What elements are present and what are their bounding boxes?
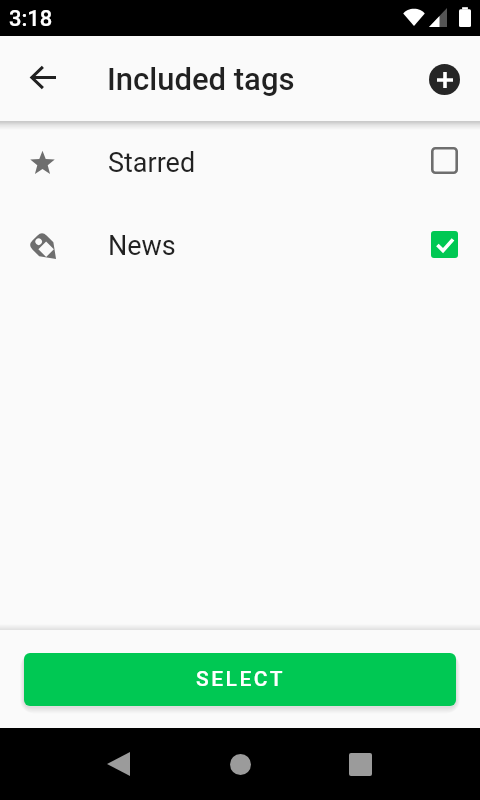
- button[interactable]: Home: [204, 728, 276, 800]
- staticText: SELECT: [196, 667, 285, 692]
- button[interactable]: Recent apps: [324, 728, 396, 800]
- staticText: 3:18: [9, 6, 53, 32]
- button[interactable]: Add tag: [420, 55, 468, 103]
- button[interactable]: SELECT: [24, 653, 456, 706]
- button[interactable]: Starred: [0, 121, 480, 204]
- staticText: Starred: [108, 147, 196, 179]
- staticText: News: [108, 230, 176, 262]
- button[interactable]: Back: [18, 55, 66, 103]
- button[interactable]: Toggle: [424, 226, 464, 266]
- button[interactable]: News: [0, 204, 480, 287]
- button[interactable]: Toggle: [424, 143, 464, 183]
- button[interactable]: Back: [82, 728, 154, 800]
- staticText: Included tags: [107, 61, 295, 97]
